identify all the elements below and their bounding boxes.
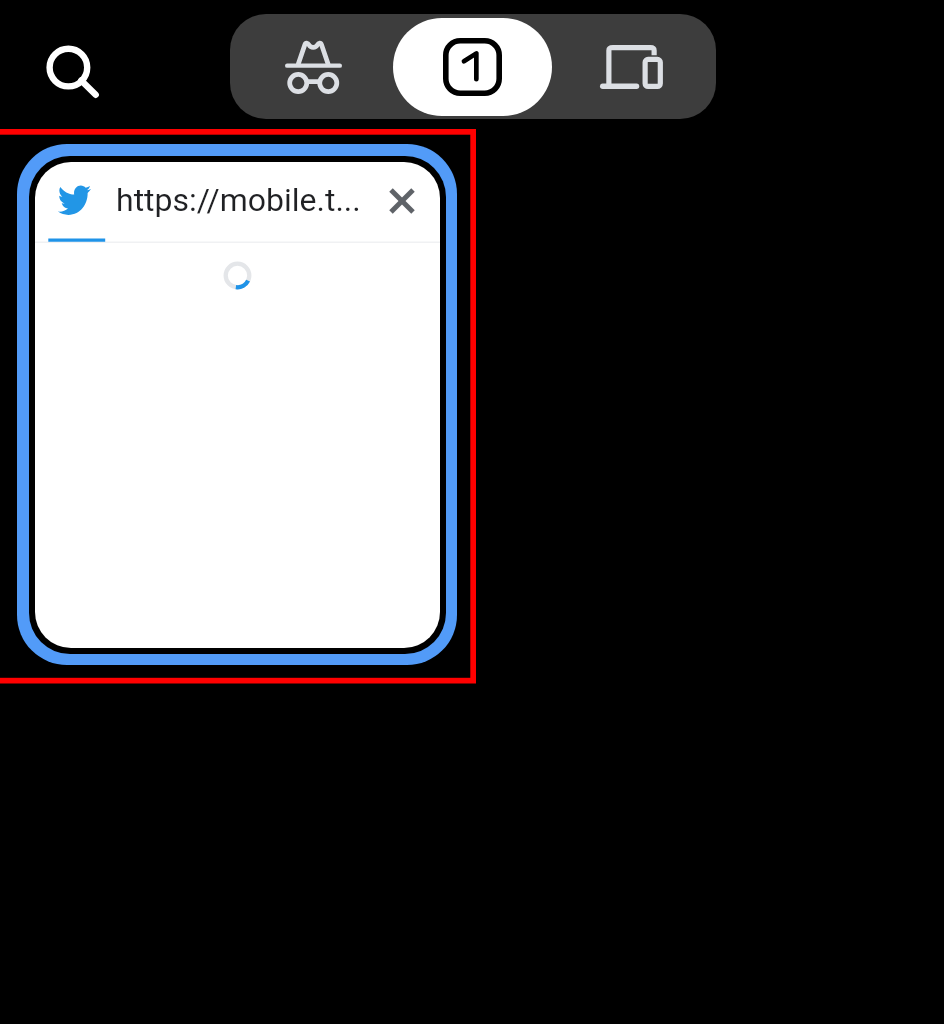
button[interactable]: Open tabs, 1 tab [393, 18, 552, 116]
button[interactable]: https://mobile.t... [17, 144, 457, 665]
button[interactable]: Close tab [375, 174, 429, 228]
button[interactable]: Search tabs [38, 37, 99, 98]
staticText: https://mobile.t... [116, 181, 361, 219]
button[interactable]: Incognito tabs [230, 14, 393, 119]
button[interactable]: Tabs from other devices [552, 14, 716, 119]
